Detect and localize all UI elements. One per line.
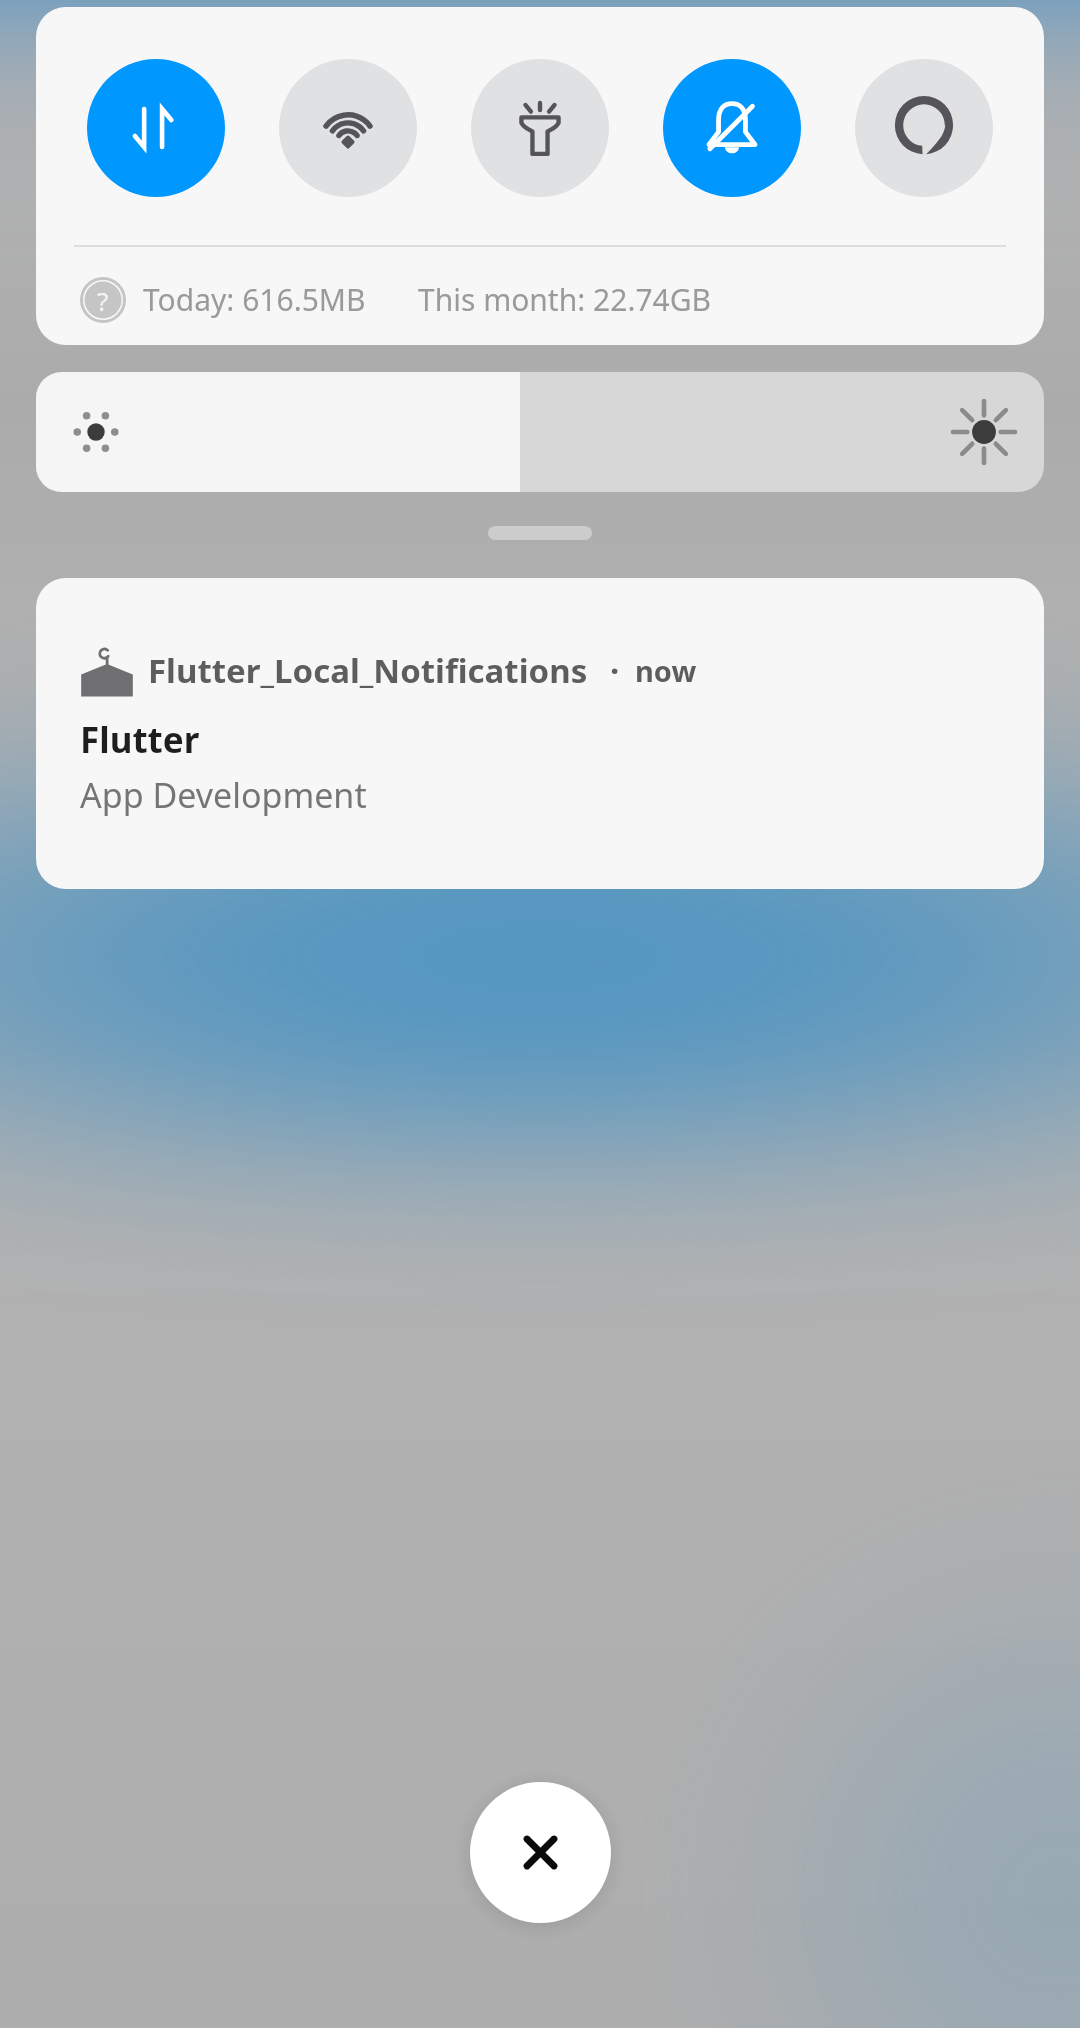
staticText: · xyxy=(610,648,620,693)
button[interactable]: Alexa xyxy=(855,59,993,197)
button[interactable]: Close xyxy=(470,1782,611,1923)
button[interactable]: Flutter_Local_Notifications xyxy=(36,578,1044,889)
staticText: Today: 616.5MB xyxy=(143,279,366,320)
staticText: now xyxy=(635,651,697,690)
button[interactable]: Brightness xyxy=(36,372,1044,492)
staticText: Flutter xyxy=(80,716,200,764)
button[interactable]: Flashlight xyxy=(471,59,609,197)
button[interactable]: Do not disturb xyxy=(663,59,801,197)
button[interactable]: Mobile data xyxy=(87,59,225,197)
staticText: This month: 22.74GB xyxy=(418,279,712,320)
button[interactable]: Wi-Fi xyxy=(279,59,417,197)
staticText: ? xyxy=(97,283,109,318)
staticText: App Development xyxy=(80,772,367,818)
staticText: Flutter_Local_Notifications xyxy=(148,648,588,693)
